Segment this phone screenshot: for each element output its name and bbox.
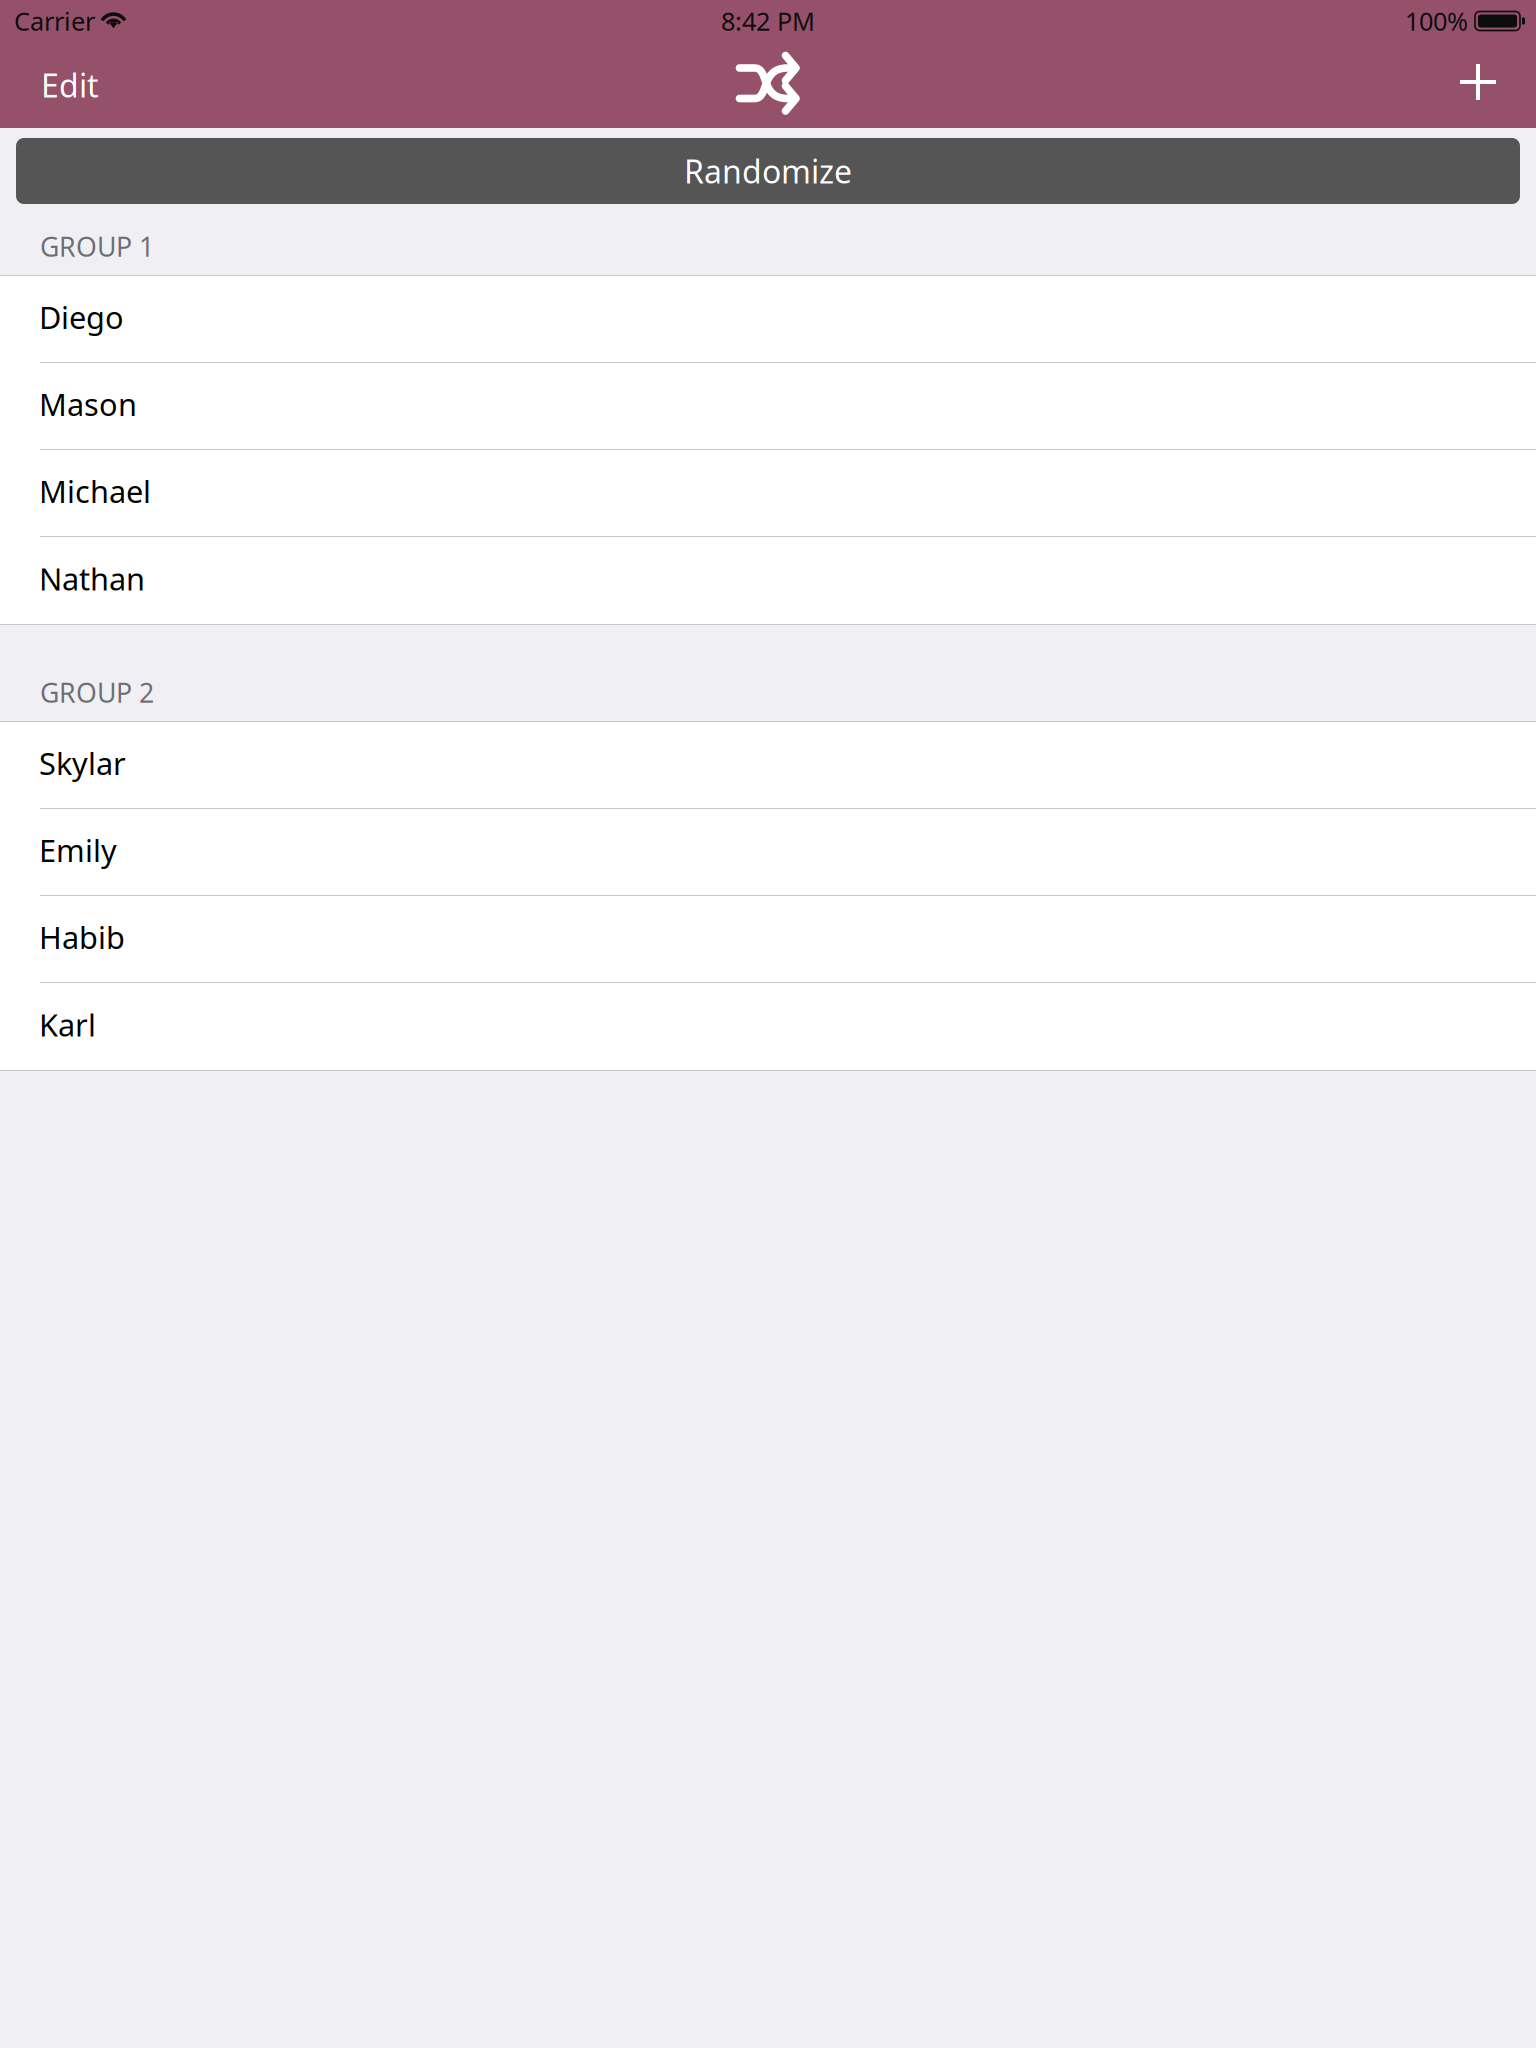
button[interactable]: Habib	[0, 896, 1536, 983]
button[interactable]: Add	[1434, 42, 1536, 128]
staticText: Skylar	[39, 743, 126, 783]
staticText: Michael	[39, 471, 151, 511]
button[interactable]: Nathan	[0, 537, 1536, 624]
button[interactable]: Edit	[0, 42, 123, 128]
button[interactable]: Mason	[0, 363, 1536, 450]
staticText: Emily	[39, 830, 117, 870]
staticText: Karl	[39, 1004, 96, 1045]
staticText: Diego	[39, 297, 124, 337]
staticText: Nathan	[39, 558, 145, 599]
staticText: 100%	[1405, 4, 1468, 38]
staticText: Randomize	[684, 150, 852, 192]
staticText: Habib	[39, 917, 125, 957]
button[interactable]: Michael	[0, 450, 1536, 537]
button[interactable]: Karl	[0, 983, 1536, 1070]
staticText: Edit	[41, 64, 99, 106]
staticText: GROUP 1	[40, 229, 154, 264]
staticText: GROUP 2	[40, 675, 154, 710]
staticText: 8:42 PM	[721, 4, 815, 38]
button[interactable]: Randomize	[16, 138, 1520, 204]
button[interactable]: Diego	[0, 276, 1536, 363]
button[interactable]: Shuffle	[708, 42, 828, 128]
staticText: Carrier	[14, 4, 95, 38]
button[interactable]: Skylar	[0, 722, 1536, 809]
button[interactable]: Emily	[0, 809, 1536, 896]
staticText: Mason	[39, 384, 137, 424]
